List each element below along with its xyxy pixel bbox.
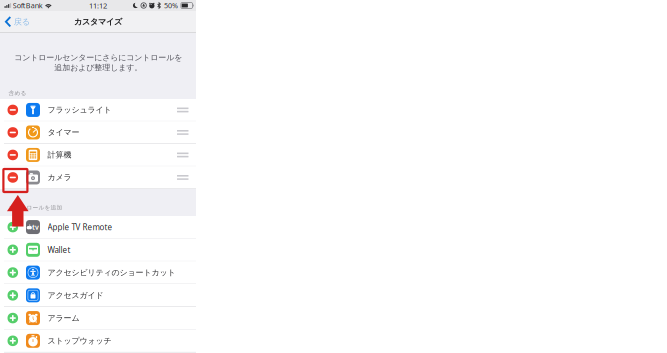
staticText: アクセスガイド xyxy=(47,290,103,300)
button[interactable]: アラーム xyxy=(0,307,196,330)
staticText: コントロールセンターにさらにコントロールを 追加および整理します。 xyxy=(14,52,182,73)
staticText: 含める xyxy=(8,89,26,97)
staticText: アクセシビリティのショートカット xyxy=(47,267,175,278)
button[interactable]: 計算機 xyxy=(0,144,196,166)
staticText: 11:12 xyxy=(89,0,107,11)
staticText: 戻る xyxy=(14,16,30,27)
button[interactable]: フラッシュライト xyxy=(0,99,196,121)
staticText: SoftBank xyxy=(13,1,43,10)
button[interactable]: tv xyxy=(0,216,196,239)
button[interactable]: カメラ xyxy=(0,166,196,189)
staticText: ストップウォッチ xyxy=(47,336,111,346)
button[interactable]: ストップウォッチ xyxy=(0,330,196,353)
button[interactable]: 戻る xyxy=(0,11,30,32)
staticText: 50% xyxy=(164,1,178,10)
staticText: カメラ xyxy=(47,172,71,182)
button[interactable]: アクセシビリティのショートカット xyxy=(0,261,196,284)
staticText: アラーム xyxy=(47,313,79,323)
staticText: フラッシュライト xyxy=(47,105,111,115)
staticText: コントロールを追加 xyxy=(8,204,62,211)
button[interactable]: Wallet xyxy=(0,239,196,262)
staticText: カスタマイズ xyxy=(74,17,122,27)
button[interactable]: アクセスガイド xyxy=(0,284,196,307)
staticText: タイマー xyxy=(47,127,79,137)
staticText: 計算機 xyxy=(47,150,71,160)
staticText: Apple TV Remote xyxy=(47,222,112,232)
button[interactable]: タイマー xyxy=(0,121,196,144)
staticText: Wallet xyxy=(47,244,70,255)
staticText: tv xyxy=(32,222,39,232)
